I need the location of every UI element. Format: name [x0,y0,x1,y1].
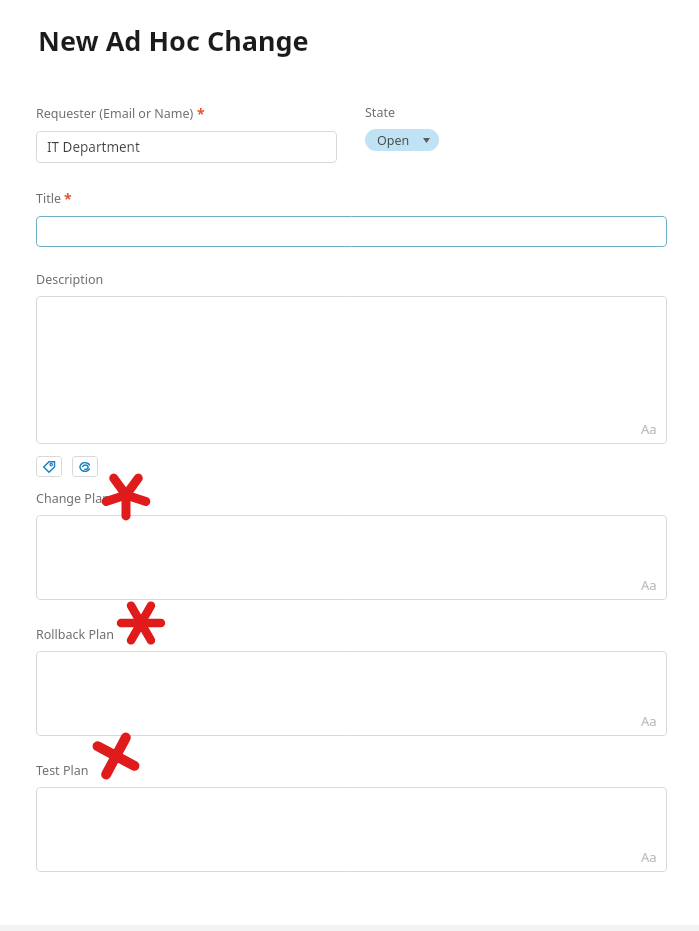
staticText: New Ad Hoc Change [38,22,309,59]
button[interactable] [36,216,667,247]
staticText: Description [36,271,104,288]
staticText: Change Plan [36,490,110,507]
button[interactable]: IT Department [36,131,337,163]
staticText: * [64,189,72,208]
button[interactable]: Aa [36,787,667,872]
staticText: Aa [641,848,657,866]
button[interactable]: Aa [36,515,667,600]
staticText: Test Plan [36,762,89,779]
button[interactable]: Aa [36,296,667,444]
staticText: State [365,104,395,121]
staticText: IT Department [47,138,140,156]
staticText: Rollback Plan [36,626,114,643]
staticText: * [197,104,205,123]
staticText: Aa [641,712,657,730]
staticText: Title [36,190,61,207]
button[interactable]: Open [365,129,439,151]
staticText: Open [377,132,410,149]
staticText: Aa [641,420,657,438]
button[interactable]: Add tag [36,456,62,477]
staticText: Aa [641,576,657,594]
staticText: Requester (Email or Name) [36,105,194,122]
button[interactable]: Aa [36,651,667,736]
button[interactable]: Attach file [72,456,98,477]
